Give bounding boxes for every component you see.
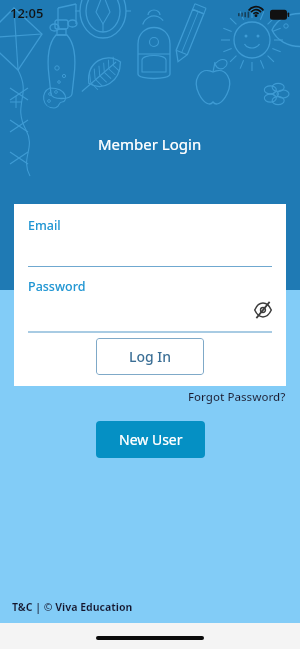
- button[interactable]: Password: [14, 267, 286, 333]
- staticText: Password: [28, 278, 86, 295]
- staticText: 12:05: [10, 4, 44, 22]
- staticText: Email: [28, 217, 61, 234]
- staticText: Member Login: [98, 134, 202, 154]
- button[interactable]: Forgot Password?: [188, 389, 286, 405]
- button[interactable]: T&C | © Viva Education: [12, 600, 300, 614]
- staticText: Log In: [129, 347, 172, 366]
- button[interactable]: New User: [96, 421, 205, 458]
- staticText: New User: [119, 430, 183, 449]
- button[interactable]: Log In: [96, 338, 204, 375]
- staticText: Forgot Password?: [188, 389, 286, 405]
- button[interactable]: Email: [14, 204, 286, 267]
- staticText: T&C | © Viva Education: [12, 600, 133, 614]
- button[interactable]: Show password: [252, 299, 274, 321]
